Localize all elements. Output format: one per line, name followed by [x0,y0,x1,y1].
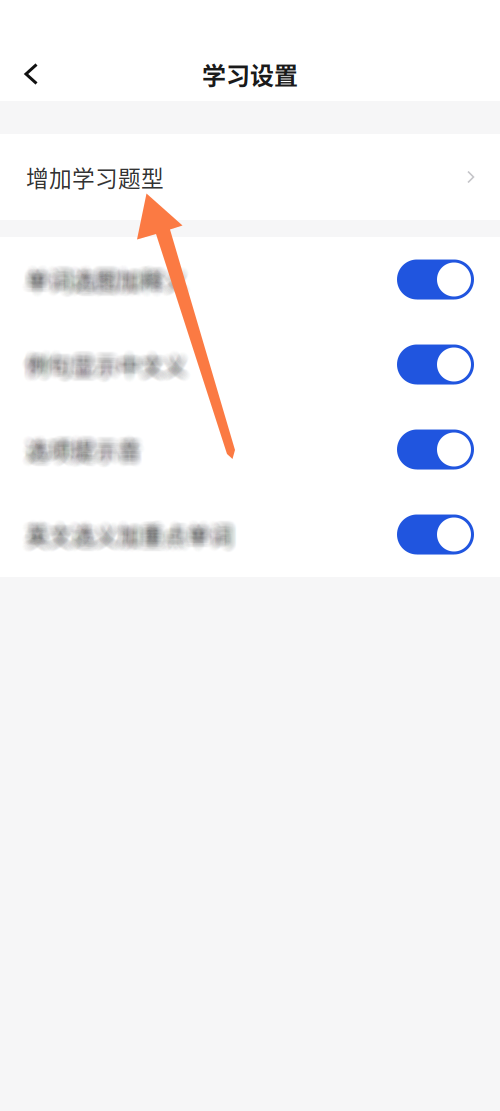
staticText: 单词选图加释义 [25,260,186,293]
staticText: 单词选图加释义 [31,262,192,295]
staticText: 英文选义加重点单词 [20,522,227,555]
staticText: 例句显示中文义 [30,353,191,385]
staticText: 例句显示中文义 [31,347,192,379]
staticText: 例句显示中文义 [33,347,194,380]
staticText: 单词选图加释义 [20,262,181,295]
staticText: 单词选图加释义 [30,262,191,295]
button[interactable]: 增加学习题型 [0,134,500,220]
staticText: 单词选图加释义 [31,262,192,294]
staticText: 例句显示中文义 [30,342,191,375]
staticText: 例句显示中文义 [24,342,185,374]
staticText: 英文选义加重点单词 [24,515,231,548]
staticText: 例句显示中文义 [25,344,186,377]
staticText: 例句显示中文义 [27,353,188,386]
staticText: 单词选图加释义 [28,259,189,292]
staticText: 英文选义加重点单词 [25,517,232,550]
staticText: 英文选义加重点单词 [27,518,234,551]
staticText: 单词选图加释义 [21,259,182,291]
staticText: 选项提示音 [22,432,137,465]
staticText: 英文选义加重点单词 [27,515,234,547]
staticText: 英文选义加重点单词 [28,512,235,544]
staticText: 英文选义加重点单词 [30,522,237,555]
staticText: 选项提示音 [29,436,144,469]
staticText: 选项提示音 [21,431,136,463]
staticText: 英文选义加重点单词 [24,514,231,547]
staticText: 单词选图加释义 [27,259,188,292]
staticText: 选项提示音 [31,438,146,470]
staticText: 例句显示中文义 [27,345,188,378]
staticText: 单词选图加释义 [29,264,190,297]
staticText: 例句显示中文义 [29,344,190,377]
staticText: 单词选图加释义 [22,260,183,293]
staticText: 选项提示音 [21,436,136,469]
staticText: 英文选义加重点单词 [25,522,232,554]
staticText: 例句显示中文义 [22,343,183,376]
staticText: 例句显示中文义 [22,344,183,377]
staticText: 单词选图加释义 [20,263,181,296]
staticText: 单词选图加释义 [27,256,188,289]
staticText: 选项提示音 [26,432,141,465]
staticText: 选项提示音 [31,433,146,466]
button[interactable]: 英文选义加重点单词 [397,514,474,554]
button[interactable]: 例句显示中文义 [397,344,474,384]
staticText: 例句显示中文义 [26,347,187,380]
staticText: 单词选图加释义 [20,260,181,292]
staticText: 英文选义加重点单词 [21,516,228,549]
staticText: 选项提示音 [20,430,135,462]
staticText: 单词选图加释义 [25,257,186,290]
staticText: 例句显示中文义 [23,349,184,382]
staticText: 选项提示音 [26,439,141,472]
staticText: 英文选义加重点单词 [27,518,234,550]
staticText: 单词选图加释义 [22,268,183,300]
staticText: 单词选图加释义 [26,268,187,301]
staticText: 单词选图加释义 [24,267,185,300]
staticText: 选项提示音 [28,431,143,464]
staticText: 单词选图加释义 [24,259,185,292]
staticText: 例句显示中文义 [31,348,192,381]
staticText: 单词选图加释义 [29,259,190,292]
staticText: 选项提示音 [26,430,141,463]
staticText: 单词选图加释义 [24,258,185,290]
staticText: 英文选义加重点单词 [26,516,233,549]
staticText: 英文选义加重点单词 [27,515,234,548]
staticText: 例句显示中文义 [26,353,187,386]
staticText: 英文选义加重点单词 [30,516,237,549]
staticText: 例句显示中文义 [26,344,187,377]
button[interactable]: 单词选图加释义 [397,259,474,299]
staticText: 单词选图加释义 [25,263,186,296]
staticText: 例句显示中文义 [22,351,183,384]
staticText: 单词选图加释义 [28,263,189,296]
staticText: 英文选义加重点单词 [22,522,229,555]
staticText: 英文选义加重点单词 [24,525,231,558]
staticText: 选项提示音 [31,429,146,461]
staticText: 单词选图加释义 [24,263,185,296]
button[interactable]: 选项提示音 [397,429,474,469]
staticText: 选项提示音 [24,427,139,459]
staticText: 选项提示音 [31,430,146,463]
staticText: 例句显示中文义 [24,349,185,382]
staticText: 单词选图加释义 [27,261,188,294]
staticText: 单词选图加释义 [20,266,181,299]
staticText: 例句显示中文义 [23,343,184,376]
staticText: 例句显示中文义 [30,346,191,379]
staticText: 例句显示中文义 [33,349,194,381]
staticText: 英文选义加重点单词 [28,525,235,557]
staticText: 英文选义加重点单词 [26,523,233,556]
staticText: 选项提示音 [29,433,144,466]
staticText: 单词选图加释义 [31,266,192,299]
button[interactable]: Back [0,50,55,97]
staticText: 英文选义加重点单词 [32,519,239,552]
staticText: 单词选图加释义 [21,264,182,297]
staticText: 单词选图加释义 [24,265,185,297]
staticText: 选项提示音 [22,436,137,469]
staticText: 例句显示中文义 [21,347,182,380]
staticText: 单词选图加释义 [32,262,193,294]
staticText: 单词选图加释义 [23,258,184,291]
staticText: 例句显示中文义 [21,345,182,378]
staticText: 例句显示中文义 [23,352,184,385]
staticText: 选项提示音 [25,433,140,466]
staticText: 单词选图加释义 [30,259,191,292]
staticText: 选项提示音 [24,435,139,468]
staticText: 英文选义加重点单词 [28,517,235,550]
staticText: 单词选图加释义 [28,268,189,301]
